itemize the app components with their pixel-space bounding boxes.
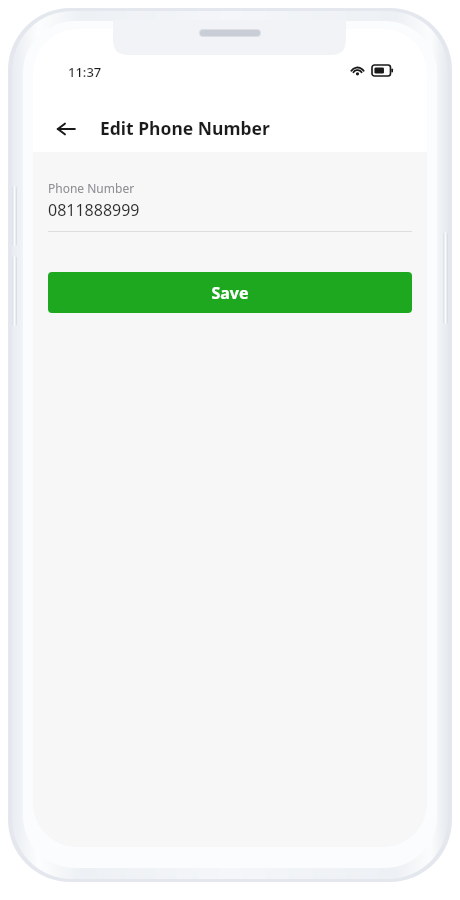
button[interactable]: Back <box>45 108 87 150</box>
staticText: Phone Number <box>48 180 135 196</box>
button[interactable]: 0811888999 <box>48 199 412 221</box>
staticText: 0811888999 <box>48 199 140 221</box>
staticText: Save <box>211 282 249 304</box>
button[interactable]: Save <box>48 272 412 313</box>
staticText: Edit Phone Number <box>100 116 270 140</box>
staticText: 11:37 <box>68 63 102 81</box>
